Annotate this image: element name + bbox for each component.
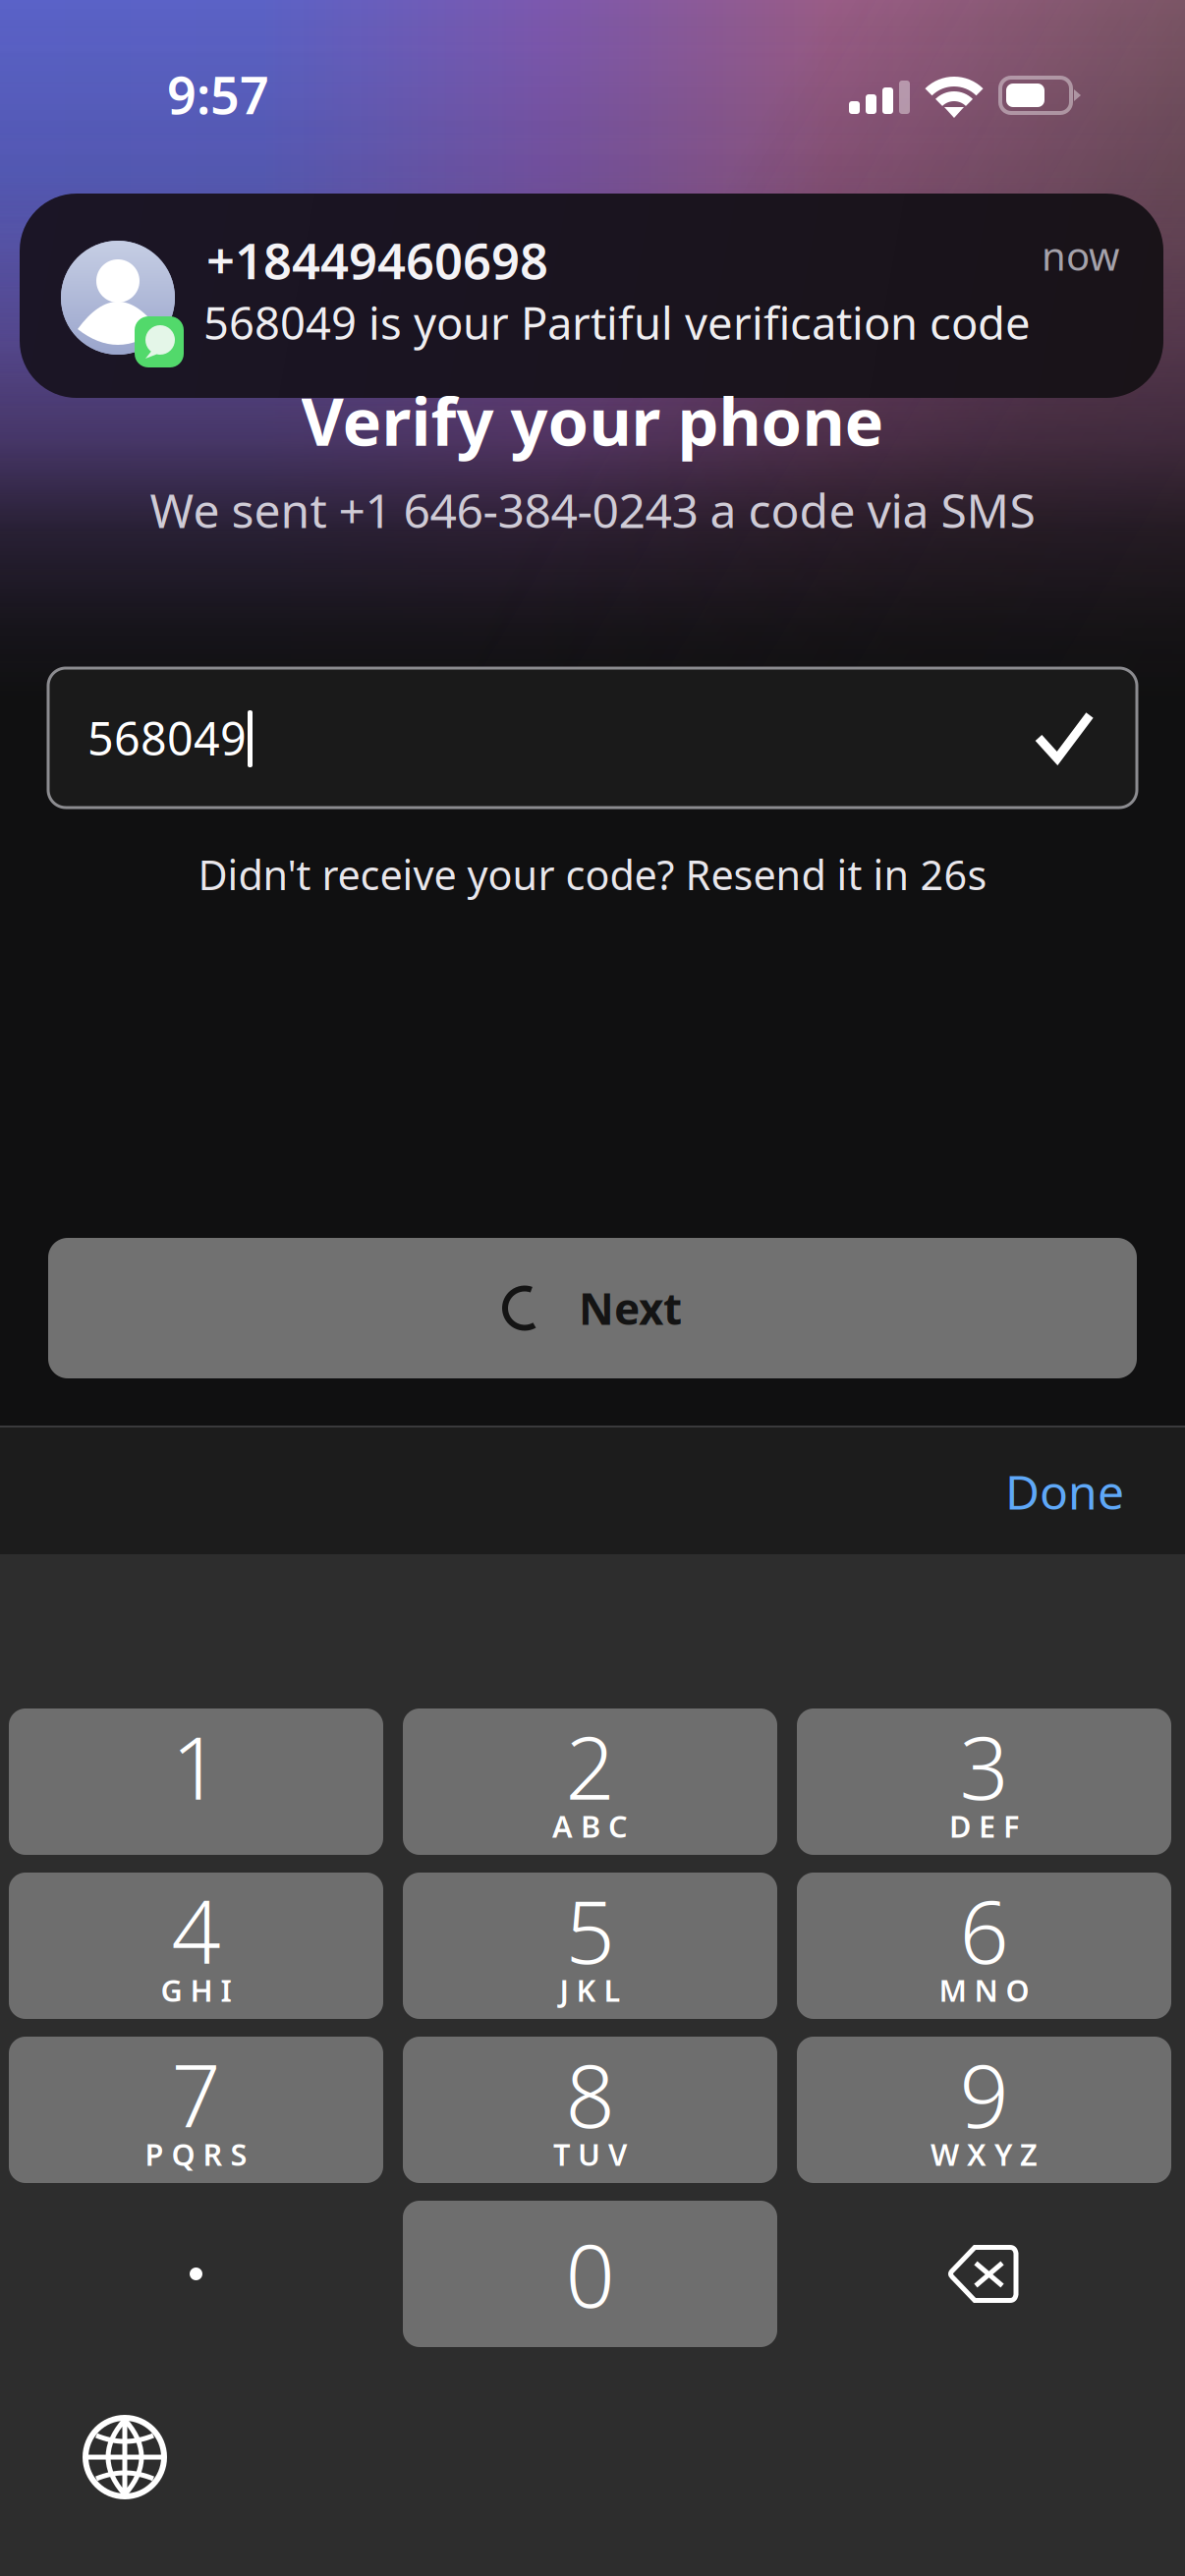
button[interactable]: 2 — [403, 1708, 777, 1855]
button[interactable]: Next — [48, 1238, 1137, 1378]
staticText: 4 — [171, 1873, 221, 1988]
staticText: Didn't receive your code? Resend it in 2… — [198, 847, 987, 901]
staticText: 7 — [171, 2037, 221, 2152]
staticText: 6 — [959, 1873, 1009, 1988]
button[interactable]: 6 — [797, 1873, 1171, 2019]
button[interactable]: 8 — [403, 2037, 777, 2183]
button[interactable]: Didn't receive your code? Resend it in 2… — [198, 847, 987, 901]
staticText: 9 — [959, 2037, 1009, 2152]
button[interactable]: 5 — [403, 1873, 777, 2019]
staticText: J K L — [560, 1970, 621, 2010]
staticText: We sent +1 646-384-0243 a code via SMS — [150, 479, 1035, 541]
staticText: 568049 is your Partiful verification cod… — [203, 293, 1031, 352]
staticText: G H I — [161, 1970, 231, 2010]
staticText: 2 — [565, 1709, 615, 1823]
button[interactable]: 1 — [9, 1708, 383, 1855]
staticText: 0 — [565, 2217, 615, 2331]
button[interactable]: Next keyboard — [85, 2418, 164, 2496]
staticText: 3 — [959, 1709, 1009, 1823]
button[interactable]: Verification code — [48, 668, 1137, 808]
staticText: Verify your phone — [301, 377, 884, 464]
staticText: P Q R S — [145, 2134, 247, 2174]
button[interactable]: Period — [9, 2201, 383, 2347]
staticText: +18449460698 — [206, 227, 548, 293]
button[interactable]: Delete — [797, 2201, 1171, 2347]
staticText: M N O — [939, 1970, 1029, 2010]
button[interactable]: +18449460698 — [20, 194, 1163, 398]
staticText: D E F — [949, 1806, 1019, 1846]
staticText: 9:57 — [167, 60, 269, 128]
staticText: 1 — [171, 1709, 221, 1823]
button[interactable]: 3 — [797, 1708, 1171, 1855]
staticText: now — [1042, 229, 1119, 281]
button[interactable]: 9 — [797, 2037, 1171, 2183]
staticText: A B C — [552, 1806, 628, 1846]
staticText: 568049 — [87, 707, 247, 768]
button[interactable]: Done — [908, 1437, 1124, 1545]
staticText: 5 — [565, 1873, 615, 1988]
staticText: W X Y Z — [931, 2134, 1038, 2174]
button[interactable]: 7 — [9, 2037, 383, 2183]
staticText: T U V — [553, 2134, 627, 2174]
staticText: 8 — [565, 2037, 615, 2152]
button[interactable]: 0 — [403, 2201, 777, 2347]
button[interactable]: 4 — [9, 1873, 383, 2019]
staticText: Done — [1005, 1460, 1124, 1523]
staticText: Next — [579, 1279, 682, 1337]
